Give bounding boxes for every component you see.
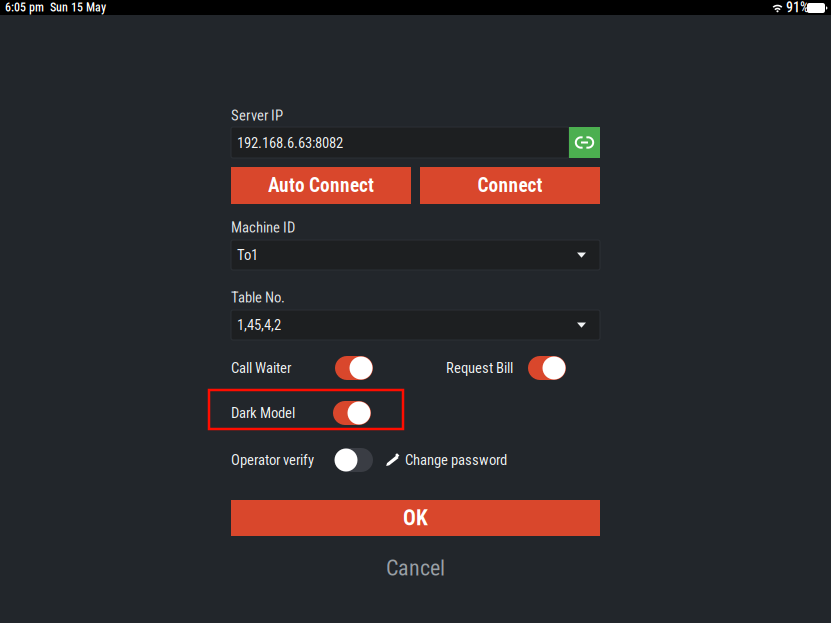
button[interactable]: To1 <box>231 240 600 270</box>
staticText: Connect <box>477 174 542 197</box>
staticText: Request Bill <box>446 359 513 377</box>
button[interactable]: Test connection <box>569 127 600 158</box>
staticText: 91% <box>786 0 809 16</box>
button[interactable]: Cancel <box>231 555 600 581</box>
button[interactable]: Connect <box>420 167 600 204</box>
staticText: OK <box>403 505 428 530</box>
staticText: Dark Model <box>231 404 295 422</box>
button[interactable]: Operator verify <box>231 447 373 473</box>
staticText: Change password <box>405 451 507 469</box>
button[interactable]: Dark Model <box>209 390 403 429</box>
staticText: Cancel <box>386 555 445 581</box>
button[interactable]: OK <box>231 500 600 536</box>
staticText: Call Waiter <box>231 359 291 377</box>
staticText: Operator verify <box>231 451 314 469</box>
button[interactable]: Call Waiter <box>231 355 373 381</box>
button[interactable]: Request Bill <box>446 355 566 381</box>
staticText: Server IP <box>231 107 283 124</box>
staticText: Sun 15 May <box>50 0 106 15</box>
button[interactable]: Auto Connect <box>231 167 411 204</box>
staticText: 192.168.6.63:8082 <box>237 134 343 152</box>
button[interactable]: 1,45,4,2 <box>231 310 600 340</box>
staticText: To1 <box>237 246 258 264</box>
staticText: Auto Connect <box>268 174 374 197</box>
staticText: 1,45,4,2 <box>237 316 281 334</box>
staticText: 6:05 pm <box>5 0 44 15</box>
staticText: Table No. <box>231 289 285 306</box>
staticText: Machine ID <box>231 219 295 236</box>
button[interactable]: Change password <box>386 450 511 470</box>
